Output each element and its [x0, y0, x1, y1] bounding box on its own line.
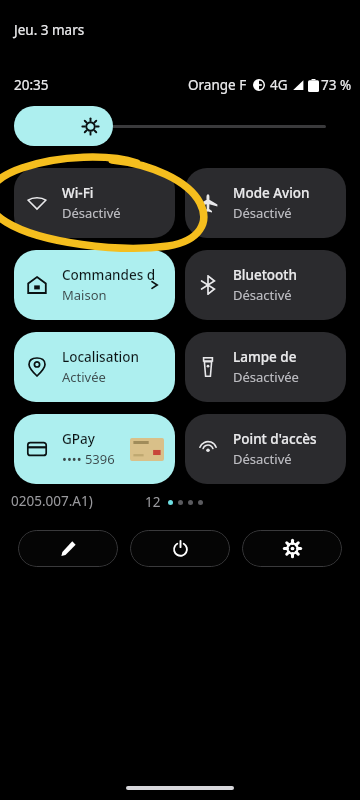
staticText: •••• 5396 — [62, 450, 115, 468]
button[interactable]: Modifier — [18, 530, 118, 567]
staticText: Wi-Fi — [62, 184, 94, 202]
staticText: 0205.007.A1) — [11, 492, 93, 510]
staticText: Désactivé — [233, 286, 292, 304]
staticText: Désactivé — [233, 204, 292, 222]
staticText: 12 — [145, 493, 161, 511]
staticText: Point d'accès — [233, 430, 317, 448]
staticText: Désactivé — [62, 204, 121, 222]
button[interactable]: Éteindre — [130, 530, 230, 567]
staticText: Désactivée — [233, 368, 299, 386]
staticText: Désactivé — [233, 450, 292, 468]
staticText: 20:35 — [14, 76, 49, 94]
button[interactable]: Bluetooth — [185, 250, 346, 320]
staticText: Jeu. 3 mars — [14, 21, 85, 39]
staticText: Lampe de poche — [233, 348, 336, 366]
staticText: Commandes d — [62, 266, 156, 284]
button[interactable]: Paramètres — [242, 530, 342, 567]
staticText: 73 % — [321, 76, 352, 94]
button[interactable]: GPay — [14, 414, 175, 484]
staticText: Orange F — [188, 76, 247, 94]
button[interactable]: Commandes d — [14, 250, 175, 320]
button[interactable]: Lampe de poche — [185, 332, 346, 402]
button[interactable]: Point d'accès — [185, 414, 346, 484]
staticText: Localisation — [62, 348, 139, 366]
staticText: Maison — [62, 286, 107, 304]
staticText: 4G — [270, 76, 288, 94]
staticText: Activée — [62, 368, 106, 386]
button[interactable] — [14, 106, 326, 146]
button[interactable]: Wi-Fi — [14, 168, 175, 238]
staticText: Mode Avion — [233, 184, 310, 202]
button[interactable]: Localisation — [14, 332, 175, 402]
staticText: GPay — [62, 430, 95, 448]
staticText: Bluetooth — [233, 266, 297, 284]
button[interactable]: Mode Avion — [185, 168, 346, 238]
